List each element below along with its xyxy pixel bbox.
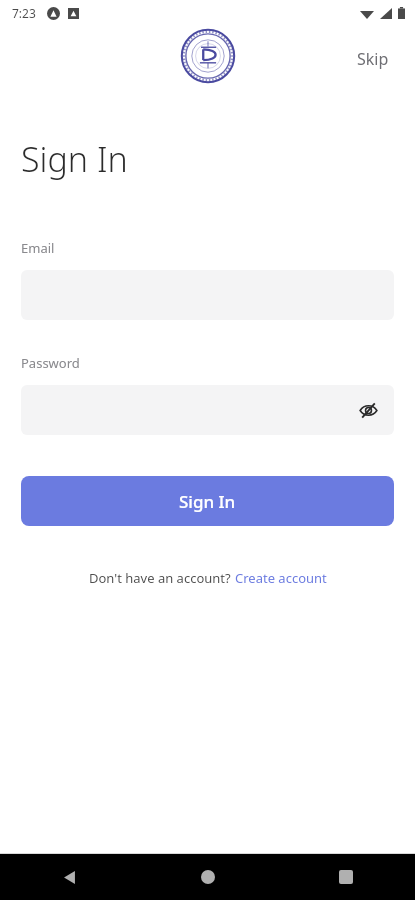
button[interactable]: Create account xyxy=(235,569,327,587)
other: App logo xyxy=(181,29,235,83)
staticText: 7:23 xyxy=(12,5,36,21)
staticText: Don't have an account? xyxy=(89,569,235,587)
button[interactable]: Recent apps xyxy=(277,854,415,900)
staticText: Sign In xyxy=(179,490,236,513)
staticText: Password xyxy=(21,354,80,372)
staticText: Create account xyxy=(235,569,327,587)
button[interactable]: Skip xyxy=(345,40,401,78)
staticText: Skip xyxy=(357,48,389,70)
button[interactable]: Back xyxy=(0,854,139,900)
button[interactable]: Show password xyxy=(349,391,388,430)
staticText: Email xyxy=(21,239,55,257)
staticText: Sign In xyxy=(21,136,128,182)
button[interactable]: Show password xyxy=(21,385,394,435)
button[interactable]: Home xyxy=(139,854,277,900)
button[interactable]: Sign In xyxy=(21,476,394,526)
